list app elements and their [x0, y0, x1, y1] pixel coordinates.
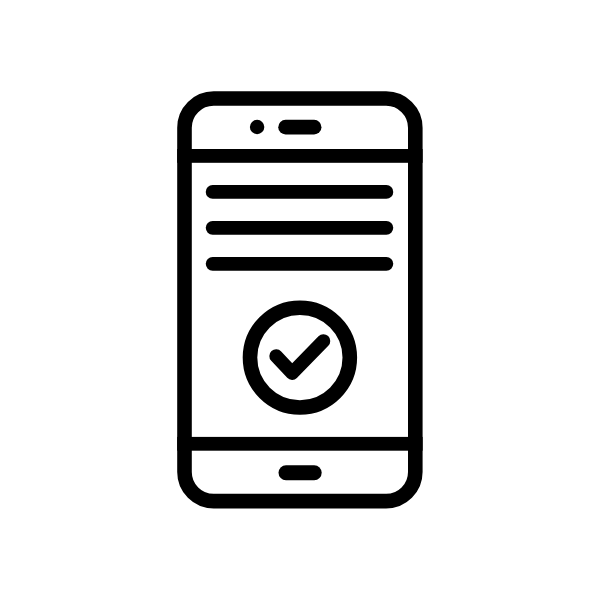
button[interactable]: Mobile verification successful [0, 0, 600, 600]
